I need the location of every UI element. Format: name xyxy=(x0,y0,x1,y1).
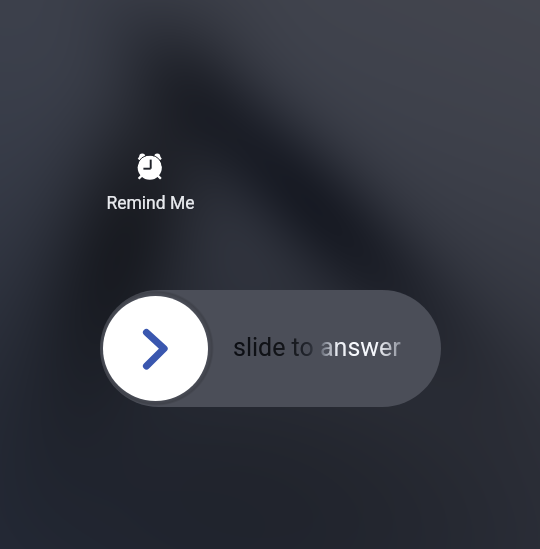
button[interactable]: slide to answer xyxy=(100,290,441,407)
staticText: Remind Me xyxy=(106,193,195,214)
button[interactable]: Remind Me xyxy=(90,153,210,214)
staticText: slide to answer xyxy=(233,333,401,362)
button[interactable]: Answer call xyxy=(103,296,208,401)
